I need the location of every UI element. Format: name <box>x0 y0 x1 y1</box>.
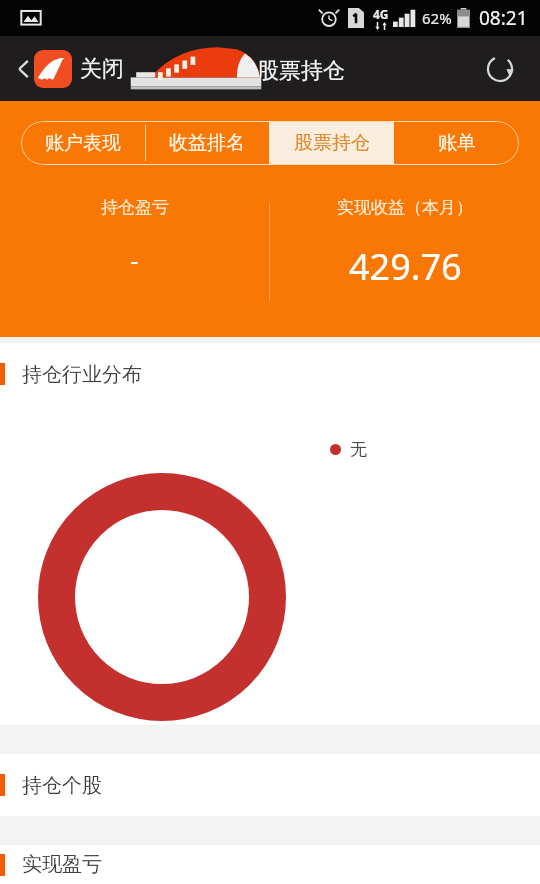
staticText: 持仓行业分布 <box>22 362 142 387</box>
staticText: 08:21 <box>479 5 528 31</box>
button[interactable]: Refresh <box>478 47 522 91</box>
button[interactable]: 持仓个股 <box>0 754 540 816</box>
button[interactable]: 账单 <box>394 121 519 165</box>
staticText: 实现盈亏 <box>22 852 102 877</box>
staticText: 账单 <box>438 131 476 155</box>
button[interactable]: 股票持仓 <box>269 121 394 165</box>
staticText: 关闭 <box>80 55 124 83</box>
staticText: 无 <box>350 439 367 460</box>
button[interactable]: Back <box>0 45 48 93</box>
staticText: 实现收益（本月） <box>337 197 473 218</box>
staticText: 4G <box>373 6 389 22</box>
staticText: 账户表现 <box>45 131 121 155</box>
staticText: 股票持仓 <box>294 131 370 155</box>
staticText: 收益排名 <box>169 131 245 155</box>
staticText: 62% <box>422 8 452 28</box>
button[interactable]: 收益排名 <box>145 121 269 165</box>
staticText: - <box>130 242 139 277</box>
staticText: 持仓个股 <box>22 773 102 798</box>
staticText: 持仓盈亏 <box>101 197 169 218</box>
staticText: -股票持仓 <box>250 54 346 84</box>
button[interactable]: 账户表现 <box>21 121 145 165</box>
staticText: 429.76 <box>349 242 462 291</box>
button[interactable]: 实现盈亏 <box>0 845 540 884</box>
